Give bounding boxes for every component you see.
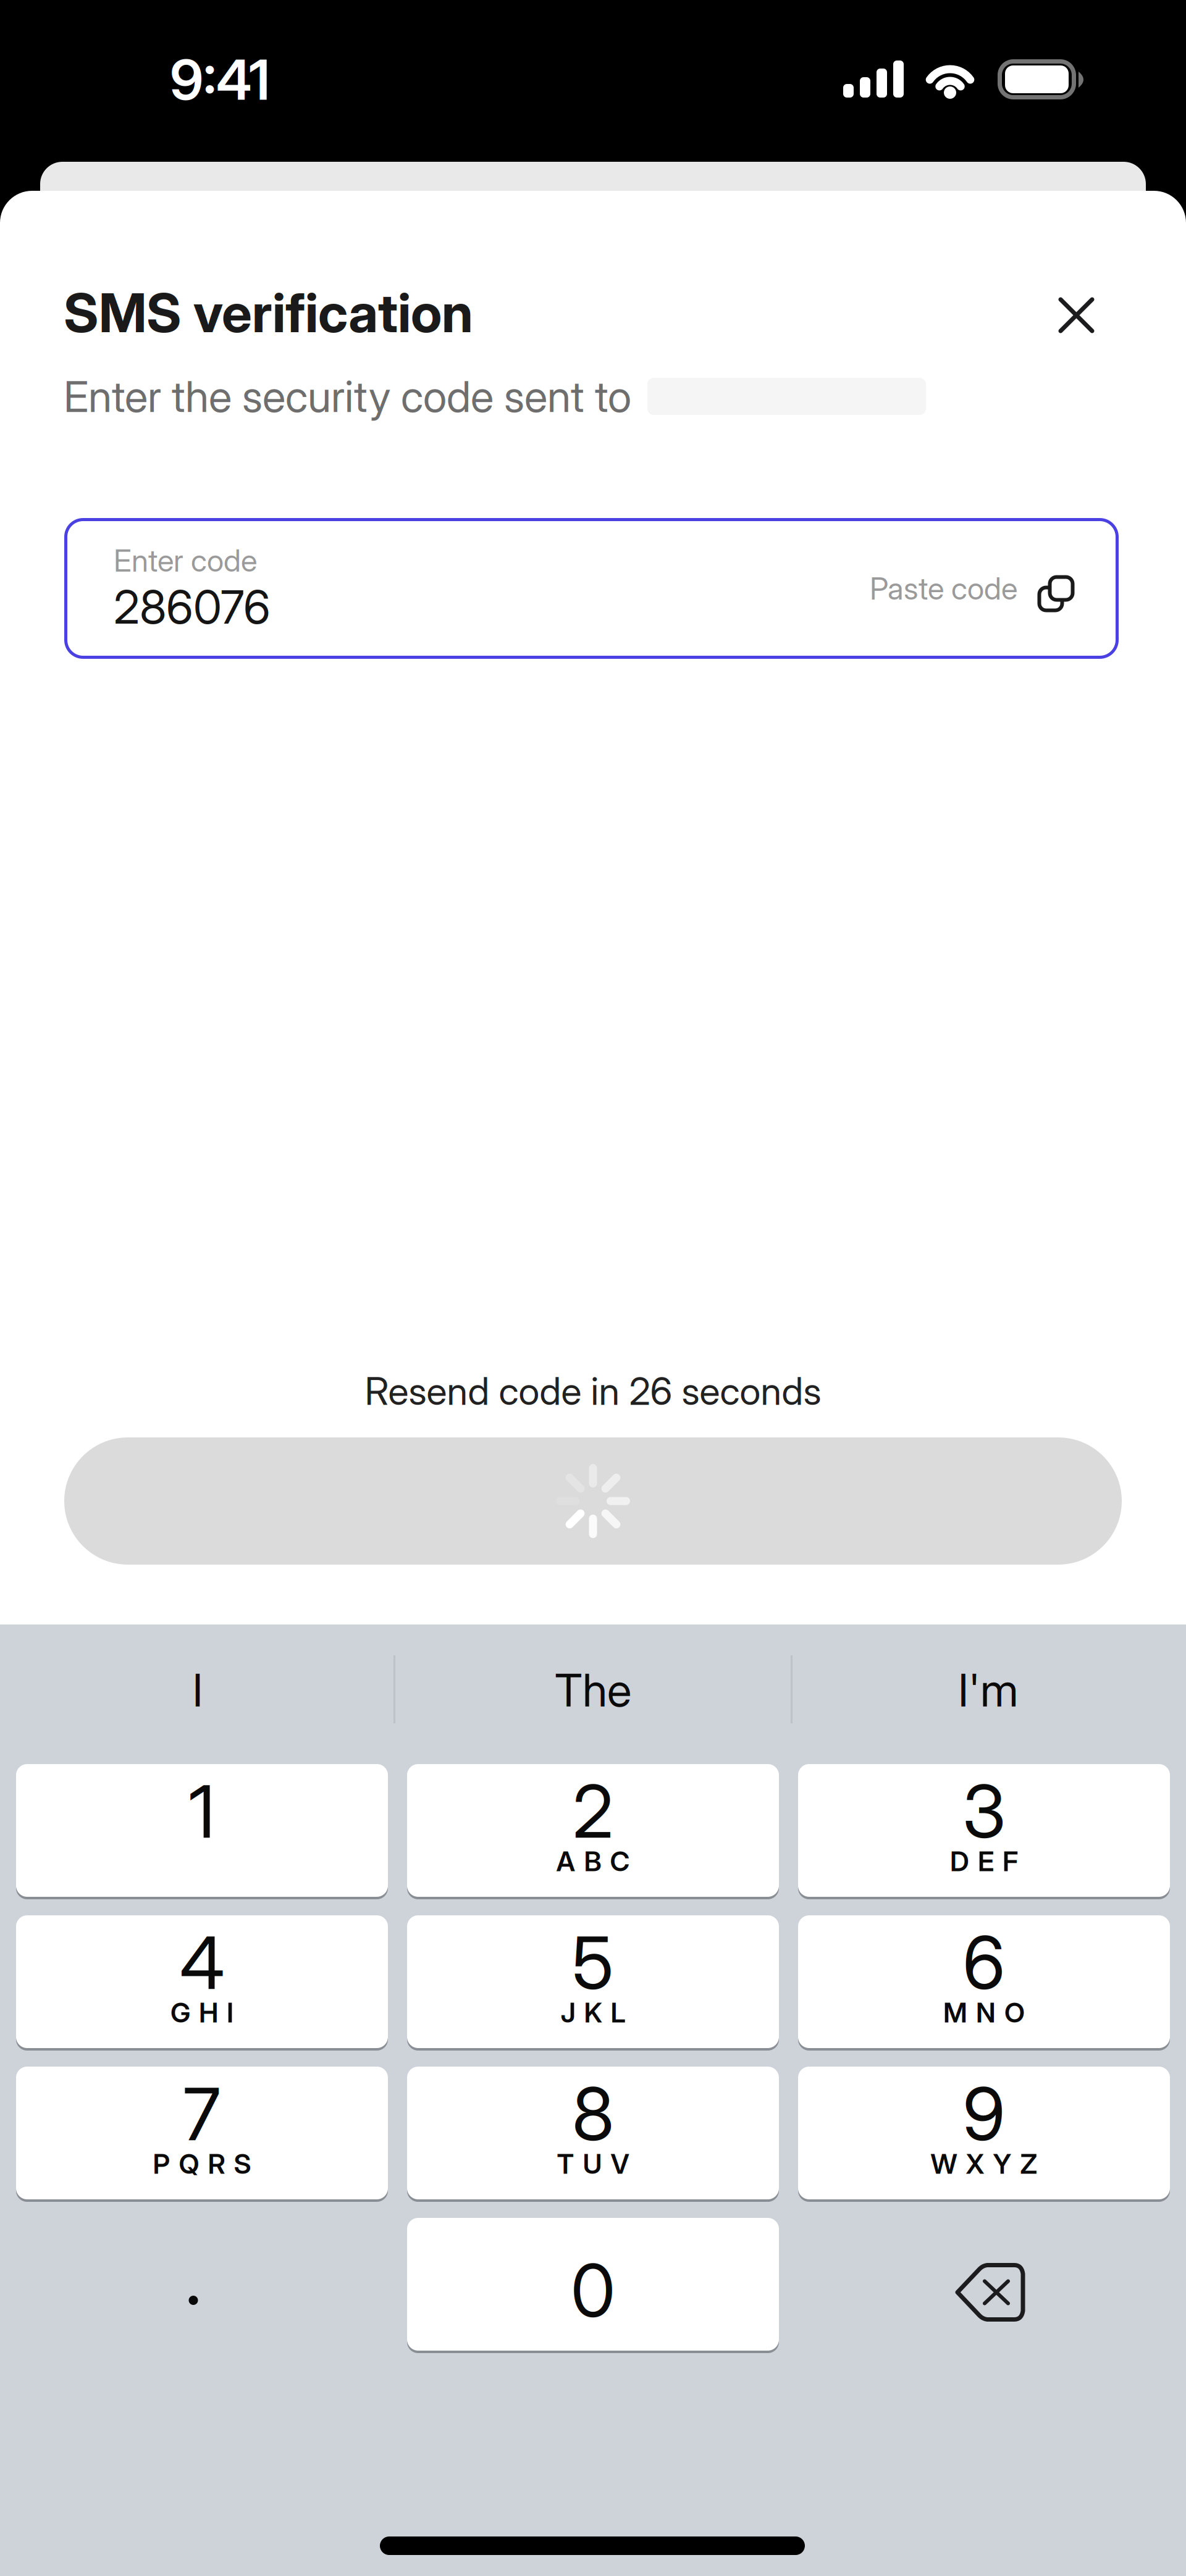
staticText: 9 xyxy=(963,2070,1005,2158)
button[interactable]: Paste code xyxy=(870,570,1069,607)
staticText: Enter the security code sent to xyxy=(64,370,631,422)
button[interactable]: Close xyxy=(1040,278,1114,353)
staticText: 1 xyxy=(189,1767,215,1855)
button[interactable]: 8 xyxy=(407,2067,779,2199)
staticText: 7 xyxy=(183,2070,221,2158)
staticText: SMS verification xyxy=(64,280,473,345)
staticText: Enter code xyxy=(114,542,257,579)
staticText: A B C xyxy=(556,1845,630,1878)
button[interactable]: Verifying xyxy=(64,1437,1122,1565)
button[interactable]: 6 xyxy=(798,1915,1170,2048)
staticText: D E F xyxy=(950,1845,1018,1878)
button[interactable]: The xyxy=(420,1650,766,1730)
button[interactable]: Enter code xyxy=(64,518,1119,659)
staticText: 286076 xyxy=(114,579,271,635)
staticText: 0 xyxy=(571,2247,615,2334)
staticText: The xyxy=(555,1663,631,1717)
staticText: 6 xyxy=(963,1919,1005,2006)
button[interactable]: 0 xyxy=(407,2218,779,2351)
button[interactable]: 4 xyxy=(16,1915,388,2048)
button[interactable]: 9 xyxy=(798,2067,1170,2199)
staticText: P Q R S xyxy=(153,2147,251,2180)
staticText: J K L xyxy=(561,1996,625,2029)
button[interactable]: 1 xyxy=(16,1764,388,1897)
button[interactable]: I xyxy=(25,1650,371,1730)
staticText: 4 xyxy=(180,1919,224,2006)
staticText: 8 xyxy=(572,2070,614,2158)
staticText: 5 xyxy=(572,1919,614,2006)
staticText: 9:41 xyxy=(170,46,270,113)
button[interactable]: Decimal point xyxy=(16,2218,388,2351)
staticText: I'm xyxy=(958,1663,1019,1717)
staticText: Resend code in 26 seconds xyxy=(365,1368,821,1414)
button[interactable]: 3 xyxy=(798,1764,1170,1897)
staticText: I xyxy=(192,1663,203,1717)
staticText: T U V xyxy=(557,2147,629,2180)
staticText: W X Y Z xyxy=(931,2147,1037,2180)
button[interactable]: 7 xyxy=(16,2067,388,2199)
staticText: G H I xyxy=(170,1996,233,2029)
button[interactable]: I'm xyxy=(815,1650,1161,1730)
staticText: 3 xyxy=(962,1767,1006,1855)
button[interactable]: Delete xyxy=(798,2218,1170,2351)
button[interactable]: 5 xyxy=(407,1915,779,2048)
button[interactable]: 2 xyxy=(407,1764,779,1897)
staticText: M N O xyxy=(943,1996,1025,2029)
staticText: 2 xyxy=(573,1767,613,1855)
staticText: Paste code xyxy=(870,570,1017,607)
